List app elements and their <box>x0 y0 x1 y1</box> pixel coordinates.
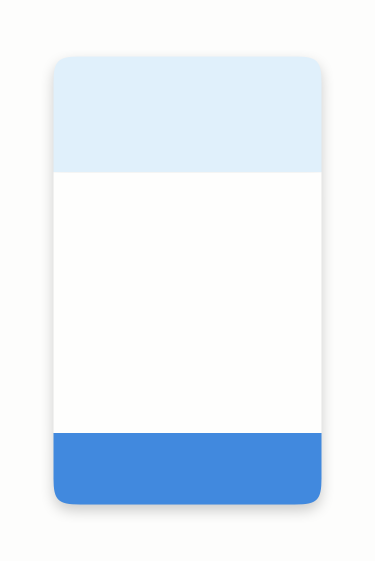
button[interactable]: Continue <box>53 433 321 504</box>
